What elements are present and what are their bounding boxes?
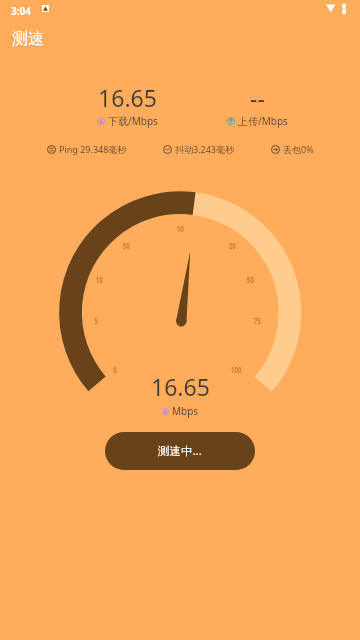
staticText: 抖动3.243毫秒: [175, 143, 235, 155]
staticText: Mbps: [172, 404, 199, 418]
staticText: --: [250, 82, 265, 113]
staticText: 3:04: [11, 4, 31, 18]
staticText: 测速: [12, 29, 44, 49]
staticText: Ping 29.348毫秒: [59, 143, 127, 155]
staticText: 测速中...: [158, 443, 202, 459]
staticText: 16.65: [151, 371, 210, 402]
button[interactable]: 测速中...: [105, 432, 255, 470]
staticText: 10: [177, 222, 184, 235]
staticText: 上传/Mbps: [238, 114, 288, 128]
staticText: 5: [94, 314, 98, 327]
staticText: 100: [231, 363, 242, 376]
staticText: 0: [113, 363, 117, 376]
staticText: 50: [123, 239, 130, 252]
staticText: 丢包0%: [283, 143, 314, 155]
staticText: 下载/Mbps: [108, 114, 158, 128]
staticText: 20: [229, 239, 236, 252]
staticText: 75: [254, 314, 261, 327]
staticText: 50: [247, 273, 254, 286]
staticText: 10: [96, 273, 103, 286]
staticText: 16.65: [98, 82, 157, 113]
